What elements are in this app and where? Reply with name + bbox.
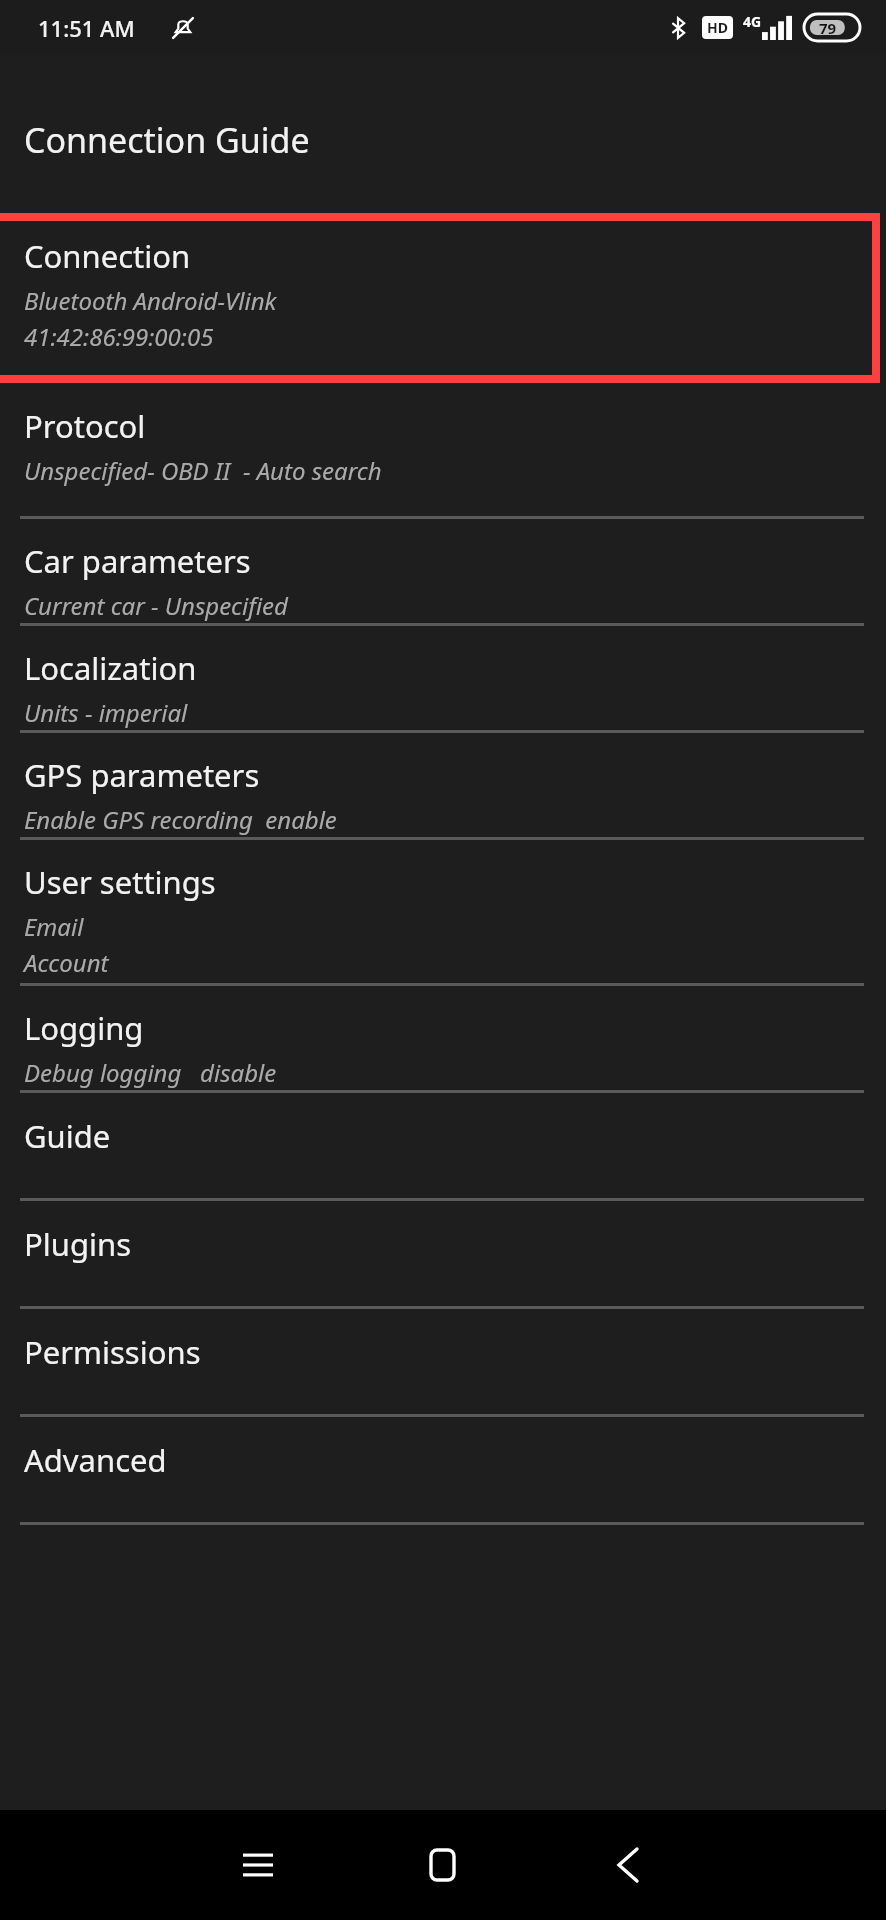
staticText: Email	[24, 910, 84, 943]
button[interactable]: Recent apps	[228, 1835, 288, 1895]
staticText: Enable GPS recording enable	[24, 803, 337, 836]
staticText: 79	[819, 18, 837, 38]
staticText: Account	[24, 946, 109, 979]
button[interactable]: Car parameters	[0, 519, 886, 623]
staticText: 41:42:86:99:00:05	[24, 320, 214, 353]
staticText: Guide	[24, 1115, 111, 1157]
button[interactable]: Plugins	[0, 1201, 886, 1306]
staticText: Localization	[24, 647, 197, 689]
staticText: Advanced	[24, 1439, 167, 1481]
staticText: Connection	[24, 235, 191, 277]
staticText: Protocol	[24, 405, 146, 447]
button[interactable]: User settings	[0, 840, 886, 983]
staticText: Connection Guide	[24, 117, 310, 163]
button[interactable]: Protocol	[0, 383, 886, 516]
button[interactable]: GPS parameters	[0, 733, 886, 837]
button[interactable]: Logging	[0, 986, 886, 1090]
staticText: Unspecified- OBD II - Auto search	[24, 454, 382, 487]
staticText: Debug logging disable	[24, 1056, 277, 1089]
staticText: Plugins	[24, 1223, 131, 1265]
staticText: Units - imperial	[24, 696, 188, 729]
staticText: Bluetooth Android-Vlink	[24, 284, 277, 317]
button[interactable]: Advanced	[0, 1417, 886, 1522]
button[interactable]: Localization	[0, 626, 886, 730]
staticText: HD	[707, 18, 728, 37]
button[interactable]: Guide	[0, 1093, 886, 1198]
staticText: 11:51 AM	[38, 13, 135, 43]
button[interactable]: Permissions	[0, 1309, 886, 1414]
button[interactable]: Home	[412, 1835, 472, 1895]
staticText: User settings	[24, 861, 216, 903]
staticText: Logging	[24, 1007, 144, 1049]
button[interactable]: Back	[598, 1835, 658, 1895]
staticText: GPS parameters	[24, 754, 260, 796]
staticText: Car parameters	[24, 540, 251, 582]
staticText: Current car - Unspecified	[24, 589, 288, 622]
staticText: Permissions	[24, 1331, 201, 1373]
staticText: 4G	[743, 12, 762, 31]
button[interactable]: Connection	[0, 221, 872, 375]
